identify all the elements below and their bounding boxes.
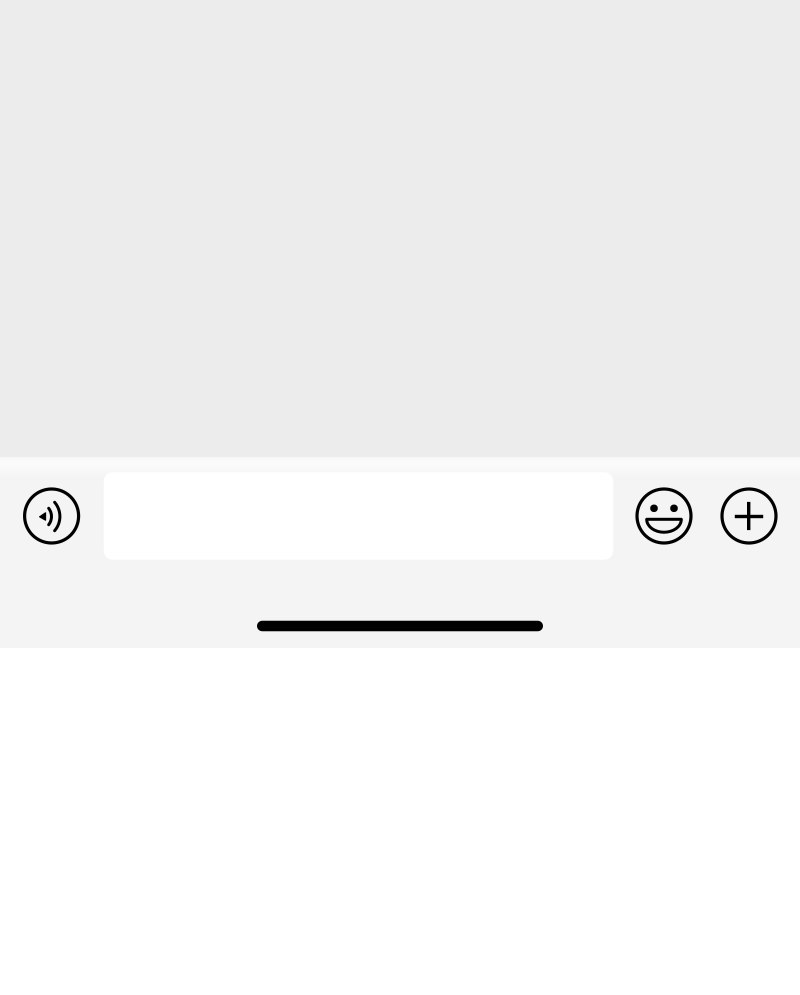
- button[interactable]: Add attachment: [711, 478, 787, 554]
- button[interactable]: Emoji: [626, 478, 702, 554]
- button[interactable]: Audio message: [14, 478, 90, 554]
